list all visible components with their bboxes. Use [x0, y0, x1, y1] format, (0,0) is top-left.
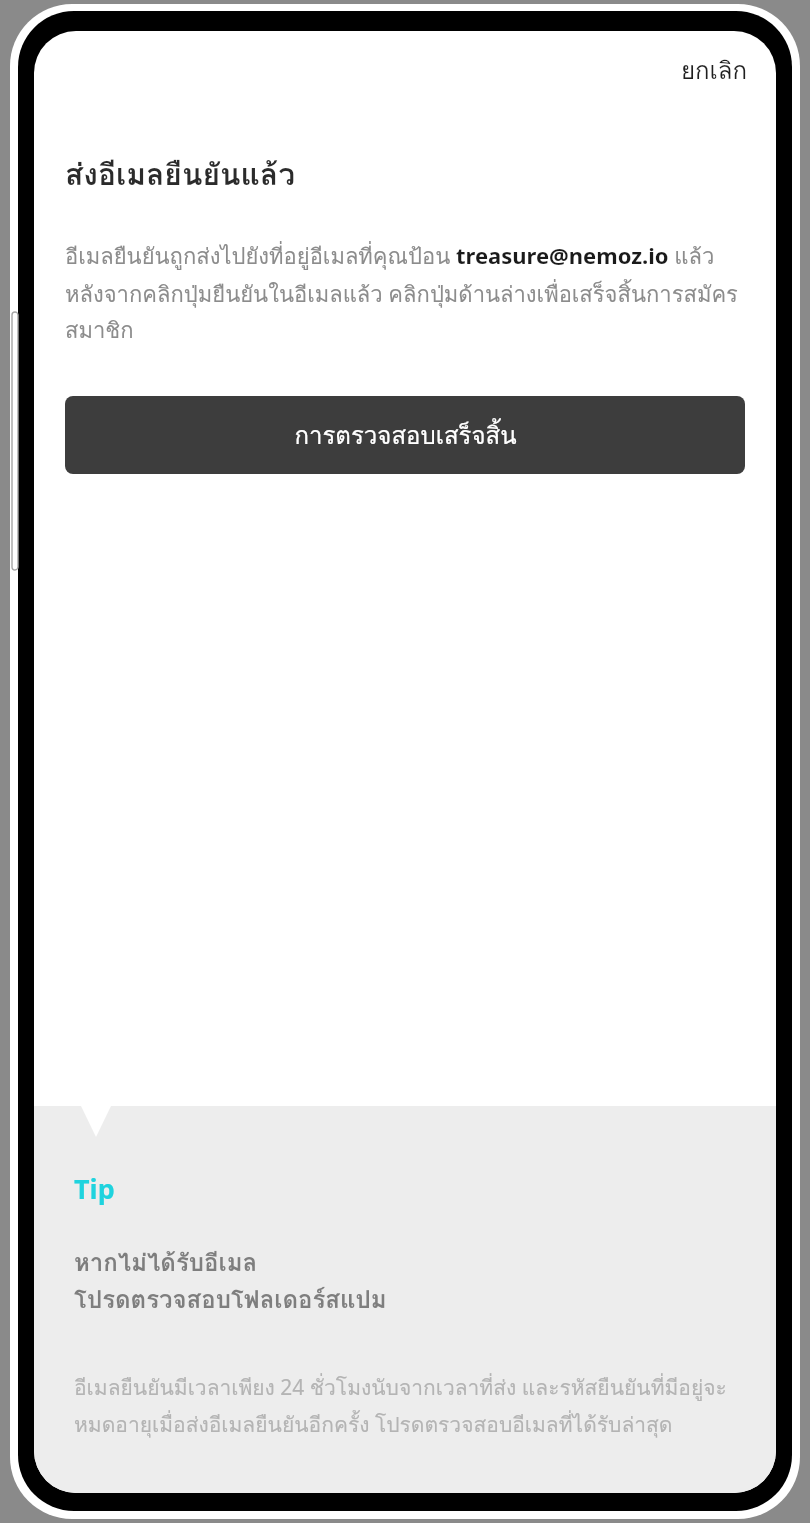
staticText: หากไม่ได้รับอีเมล โปรดตรวจสอบโฟลเดอร์สแป…	[74, 1243, 387, 1319]
staticText: อีเมลยืนยันมีเวลาเพียง 24 ชั่วโมงนับจากเ…	[74, 1371, 742, 1441]
staticText: Tip	[74, 1170, 115, 1207]
button[interactable]: การตรวจสอบเสร็จสิ้น	[65, 396, 745, 474]
staticText: ยกเลิก	[681, 51, 748, 89]
staticText: อีเมลยืนยันถูกส่งไปยังที่อยู่อีเมลที่คุณ…	[65, 239, 746, 348]
staticText: การตรวจสอบเสร็จสิ้น	[294, 416, 517, 454]
button[interactable]: ยกเลิก	[667, 41, 762, 99]
staticText: ส่งอีเมลยืนยันแล้ว	[65, 151, 295, 199]
